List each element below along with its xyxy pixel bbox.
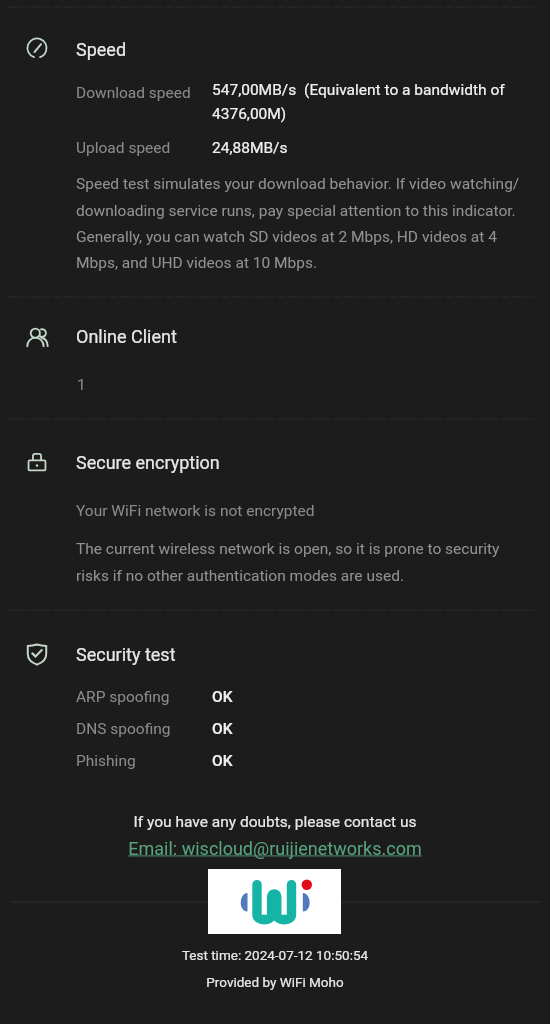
staticText: Security test <box>76 644 176 665</box>
staticText: 1 <box>77 376 86 394</box>
staticText: ARP spoofing <box>76 688 170 706</box>
staticText: Secure encryption <box>76 452 220 473</box>
staticText: Phishing <box>76 752 136 770</box>
other: Security test <box>25 642 49 666</box>
other: Online clients <box>26 326 49 349</box>
staticText: Upload speed <box>76 139 171 157</box>
staticText: Online Client <box>76 326 177 347</box>
staticText: Speed <box>76 39 127 60</box>
staticText: DNS spoofing <box>76 720 171 738</box>
staticText: Test time: 2024-07-12 10:50:54 <box>0 947 550 963</box>
staticText: Email: wiscloud@ruijienetworks.com <box>0 838 550 859</box>
staticText: OK <box>212 688 233 706</box>
staticText: The current wireless network is open, so… <box>76 540 516 584</box>
other: Speed <box>26 37 48 59</box>
staticText: Your WiFi network is not encrypted <box>76 502 315 520</box>
other: Secure encryption <box>26 451 48 473</box>
staticText: OK <box>212 720 233 738</box>
button[interactable]: Email: wiscloud@ruijienetworks.com <box>0 836 550 864</box>
staticText: OK <box>212 752 233 770</box>
staticText: Provided by WiFi Moho <box>0 974 550 990</box>
staticText: 24,88MB/s <box>212 139 288 157</box>
staticText: Download speed <box>76 84 191 102</box>
staticText: If you have any doubts, please contact u… <box>0 813 550 831</box>
staticText: 547,00MB/s (Equivalent to a bandwidth of… <box>212 81 508 123</box>
staticText: Speed test simulates your download behav… <box>76 175 531 271</box>
